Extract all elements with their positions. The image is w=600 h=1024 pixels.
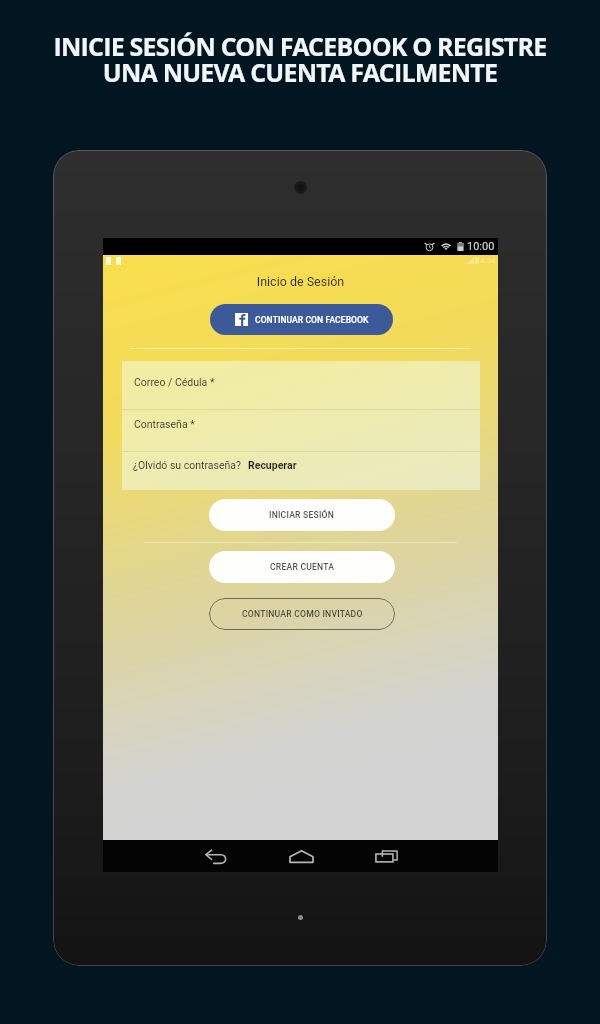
- button[interactable]: CREAR CUENTA: [209, 551, 395, 583]
- staticText: Correo / Cédula *: [134, 376, 215, 388]
- button[interactable]: Recuperar: [248, 459, 297, 471]
- button[interactable]: Correo / Cédula *: [122, 361, 480, 409]
- staticText: Inicio de Sesión: [103, 274, 498, 289]
- staticText: INICIAR SESIÓN: [269, 510, 335, 520]
- staticText: INICIE SESIÓN CON FACEBOOK O REGISTRE: [0, 29, 600, 63]
- button[interactable]: Recent apps: [356, 840, 416, 872]
- staticText: 10:00: [467, 240, 495, 253]
- staticText: ¿Olvidó su contraseña?: [133, 459, 241, 471]
- button[interactable]: CONTINUAR COMO INVITADO: [209, 598, 395, 630]
- button[interactable]: INICIAR SESIÓN: [209, 499, 395, 531]
- staticText: CREAR CUENTA: [270, 562, 335, 572]
- button[interactable]: Home: [271, 840, 331, 872]
- staticText: CONTINUAR CON FACEBOOK: [255, 315, 369, 325]
- staticText: CONTINUAR COMO INVITADO: [242, 609, 363, 619]
- staticText: 4:54: [480, 256, 496, 265]
- button[interactable]: Back: [186, 840, 246, 872]
- staticText: Contraseña *: [134, 418, 195, 430]
- button[interactable]: Contraseña *: [122, 409, 480, 451]
- button[interactable]: CONTINUAR CON FACEBOOK: [210, 304, 393, 335]
- staticText: UNA NUEVA CUENTA FACILMENTE: [0, 55, 600, 89]
